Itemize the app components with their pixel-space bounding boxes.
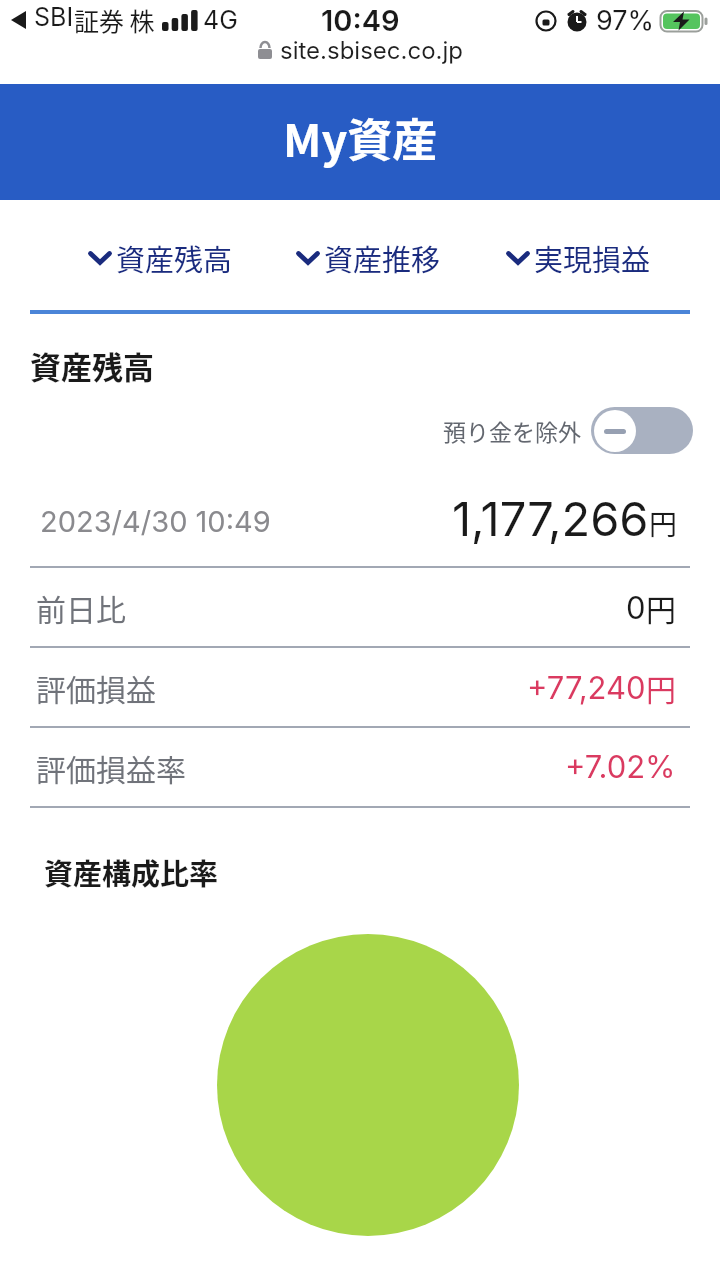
staticText: site.sbisec.co.jp <box>280 36 463 64</box>
button[interactable]: 資産推移 <box>296 234 441 282</box>
staticText: 2023/4/30 10:49 <box>40 504 271 539</box>
staticText: My資産 <box>283 105 438 170</box>
staticText: 資産推移 <box>324 237 441 279</box>
staticText: 実現損益 <box>534 237 651 279</box>
staticText: 前日比 <box>36 586 126 629</box>
staticText: 97% <box>596 4 655 37</box>
staticText: +77,240 <box>527 669 646 707</box>
staticText: 円 <box>649 503 678 544</box>
staticText: 0 <box>626 589 646 627</box>
button[interactable]: 実現損益 <box>506 234 651 282</box>
staticText: 円 <box>646 666 676 709</box>
staticText: 証券 株 <box>74 2 155 38</box>
staticText: 預り金を除外 <box>443 414 581 447</box>
staticText: 円 <box>646 586 676 629</box>
staticText: 資産残高 <box>116 237 233 279</box>
staticText: 4G <box>203 5 238 35</box>
staticText: 資産構成比率 <box>44 851 219 893</box>
staticText: 10:49 <box>321 3 400 38</box>
staticText: 評価損益率 <box>36 746 186 789</box>
staticText: +7.02% <box>565 748 676 786</box>
staticText: 資産残高 <box>30 343 154 388</box>
staticText: SBI <box>34 2 74 32</box>
staticText: 評価損益 <box>36 666 156 709</box>
staticText: 1,177,266 <box>452 490 649 547</box>
button[interactable]: 預り金を除外 <box>443 407 693 454</box>
button[interactable]: 資産残高 <box>88 234 233 282</box>
